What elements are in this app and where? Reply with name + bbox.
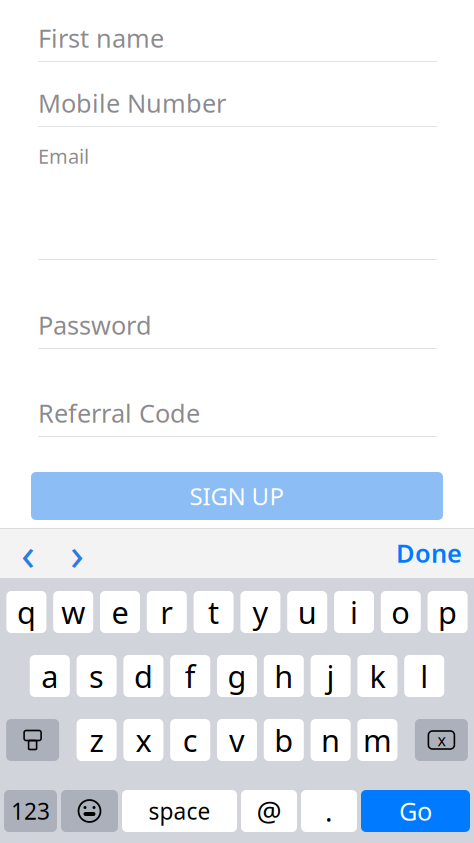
staticText: e	[111, 592, 128, 632]
button[interactable]: x	[123, 719, 163, 761]
button[interactable]: Shift	[6, 719, 59, 761]
staticText: a	[41, 656, 58, 696]
staticText: r	[160, 592, 173, 632]
button[interactable]: v	[217, 719, 257, 761]
staticText: d	[134, 656, 153, 696]
staticText: j	[327, 656, 335, 696]
staticText: f	[185, 656, 196, 696]
button[interactable]: z	[77, 719, 117, 761]
staticText: space	[148, 796, 210, 826]
button[interactable]: SIGN UP	[31, 472, 443, 520]
button[interactable]: y	[240, 591, 280, 633]
staticText: k	[369, 656, 385, 696]
staticText: o	[391, 592, 410, 632]
button[interactable]: n	[311, 719, 351, 761]
button[interactable]: u	[287, 591, 327, 633]
button[interactable]: Done	[396, 531, 462, 575]
button[interactable]: t	[194, 591, 234, 633]
staticText: .	[325, 792, 333, 830]
staticText: z	[90, 720, 104, 760]
button[interactable]: e	[100, 591, 140, 633]
button[interactable]: s	[77, 655, 117, 697]
staticText: y	[252, 592, 268, 632]
button[interactable]: c	[170, 719, 210, 761]
staticText: n	[321, 720, 340, 760]
button[interactable]: b	[264, 719, 304, 761]
staticText: c	[183, 720, 198, 760]
button[interactable]: l	[404, 655, 444, 697]
button[interactable]: @	[241, 790, 297, 832]
staticText: i	[350, 592, 358, 632]
button[interactable]: h	[264, 655, 304, 697]
staticText: ‹	[21, 523, 35, 583]
staticText: ›	[70, 523, 84, 583]
staticText: 123	[11, 796, 50, 826]
button[interactable]: Go	[361, 790, 470, 832]
button[interactable]: r	[147, 591, 187, 633]
staticText: Go	[399, 794, 432, 828]
button[interactable]: j	[311, 655, 351, 697]
staticText: Password	[38, 308, 152, 342]
staticText: p	[438, 592, 457, 632]
button[interactable]: a	[30, 655, 70, 697]
staticText: g	[227, 656, 246, 696]
staticText: x	[437, 729, 445, 751]
button[interactable]: 123	[4, 790, 57, 832]
staticText: w	[61, 592, 85, 632]
staticText: t	[208, 592, 219, 632]
button[interactable]: .	[301, 790, 357, 832]
staticText: @	[256, 792, 281, 830]
staticText: b	[274, 720, 293, 760]
button[interactable]: Delete	[415, 719, 468, 761]
staticText: u	[298, 592, 317, 632]
button[interactable]: f	[170, 655, 210, 697]
staticText: h	[274, 656, 293, 696]
staticText: Email	[38, 143, 89, 169]
staticText: m	[363, 720, 392, 760]
button[interactable]: g	[217, 655, 257, 697]
button[interactable]: p	[428, 591, 468, 633]
button[interactable]: space	[122, 790, 237, 832]
staticText: s	[89, 656, 104, 696]
staticText: Referral Code	[38, 396, 200, 430]
staticText: Mobile Number	[38, 86, 226, 120]
button[interactable]: o	[381, 591, 421, 633]
staticText: First name	[38, 21, 164, 55]
staticText: Done	[396, 536, 462, 570]
staticText: l	[420, 656, 428, 696]
button[interactable]: d	[123, 655, 163, 697]
staticText: x	[135, 720, 151, 760]
staticText: v	[229, 720, 245, 760]
button[interactable]: Emoji	[61, 790, 118, 832]
button[interactable]: Next field	[57, 531, 97, 575]
button[interactable]: m	[357, 719, 397, 761]
button[interactable]: k	[357, 655, 397, 697]
button[interactable]: w	[53, 591, 93, 633]
button[interactable]: Previous field	[8, 531, 48, 575]
button[interactable]: i	[334, 591, 374, 633]
button[interactable]: q	[6, 591, 46, 633]
staticText: SIGN UP	[189, 480, 284, 512]
staticText: q	[17, 592, 36, 632]
